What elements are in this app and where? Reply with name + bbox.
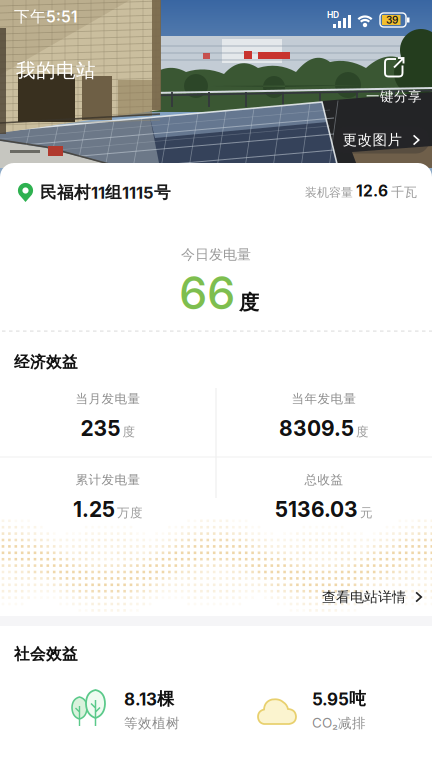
staticText: 今日发电量 (181, 246, 251, 263)
staticText: 8.13棵 (124, 688, 174, 710)
staticText: 度 (356, 424, 369, 440)
staticText: 当年发电量 (291, 391, 356, 407)
staticText: 66 (179, 266, 235, 320)
staticText: 民福村11组1115号 (40, 182, 171, 203)
staticText: 万度 (117, 505, 143, 521)
staticText: 度 (122, 424, 135, 440)
button[interactable]: 一键分享 (366, 56, 422, 105)
staticText: 总收益 (304, 472, 343, 488)
staticText: 235 (80, 416, 120, 441)
staticText: 当月发电量 (75, 391, 140, 407)
staticText: 度 (239, 290, 259, 315)
staticText: 累计发电量 (75, 472, 140, 488)
staticText: 我的电站 (16, 58, 96, 83)
staticText: 12.6 (356, 182, 388, 200)
staticText: 查看电站详情 (322, 588, 406, 606)
button[interactable]: 查看电站详情 (322, 588, 424, 606)
staticText: 5136.03 (275, 497, 358, 522)
staticText: 5.95吨 (312, 688, 366, 710)
staticText: 下午5:51 (14, 7, 78, 26)
staticText: 装机容量 (305, 185, 353, 200)
staticText: 更改图片 (342, 131, 402, 149)
staticText: 一键分享 (366, 88, 422, 105)
staticText: 1.25 (73, 497, 115, 522)
button[interactable]: 更改图片 (332, 126, 429, 153)
staticText: 元 (360, 505, 373, 521)
staticText: 8309.5 (279, 416, 354, 441)
staticText: 千瓦 (391, 184, 417, 200)
staticText: 社会效益 (14, 644, 78, 664)
staticText: 经济效益 (14, 352, 78, 372)
staticText: HD (327, 10, 339, 20)
staticText: 39 (386, 14, 398, 26)
staticText: CO₂减排 (312, 715, 366, 732)
staticText: 等效植树 (124, 715, 180, 732)
